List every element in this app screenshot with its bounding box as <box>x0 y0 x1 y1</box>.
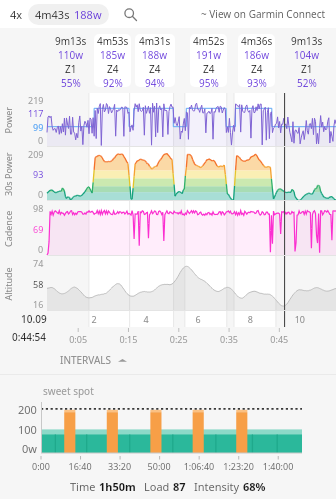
staticText: 58 <box>33 278 44 290</box>
staticText: 200 <box>18 402 37 417</box>
staticText: 0 <box>38 134 44 146</box>
staticText: 9m13s <box>55 34 87 48</box>
staticText: 93% <box>247 76 267 87</box>
button[interactable]: 4m53s <box>94 34 131 87</box>
button[interactable]: 4m36s <box>238 34 275 87</box>
staticText: 117 <box>28 107 44 119</box>
staticText: 4m43s <box>35 7 70 22</box>
staticText: 0w <box>22 441 37 456</box>
button[interactable]: 9m13s <box>52 34 90 87</box>
staticText: 98 <box>33 202 44 214</box>
button[interactable]: 4m43s <box>28 4 109 25</box>
button[interactable]: 9m13s <box>279 34 334 87</box>
staticText: 1h50m <box>99 479 136 494</box>
staticText: 185w <box>100 48 126 62</box>
staticText: 52% <box>297 76 317 87</box>
staticText: 110w <box>58 48 84 62</box>
staticText: 188w <box>142 48 168 62</box>
staticText: 92% <box>103 76 123 87</box>
staticText: Z4 <box>251 62 263 76</box>
staticText: 68% <box>243 479 266 494</box>
staticText: Time <box>70 479 99 494</box>
staticText: 4m36s <box>241 34 273 48</box>
staticText: Load <box>144 479 173 494</box>
staticText: 186w <box>244 48 270 62</box>
staticText: 74 <box>33 257 44 269</box>
staticText: Z1 <box>65 62 77 76</box>
staticText: INTERVALS <box>60 353 112 367</box>
button[interactable]: 4m52s <box>190 34 227 87</box>
staticText: ~ View on Garmin Connect <box>201 7 326 21</box>
staticText: 4m31s <box>139 34 171 48</box>
staticText: Intensity <box>194 479 243 494</box>
staticText: 209 <box>28 148 44 160</box>
staticText: Z4 <box>149 62 161 76</box>
staticText: 99 <box>33 121 44 133</box>
staticText: 93 <box>33 168 44 180</box>
button[interactable]: INTERVALS <box>56 351 131 369</box>
staticText: 100 <box>18 422 37 437</box>
staticText: 0 <box>38 243 44 255</box>
staticText: 16 <box>33 298 44 310</box>
button[interactable]: 4m31s <box>135 34 175 87</box>
staticText: 191w <box>196 48 222 62</box>
staticText: Z4 <box>107 62 119 76</box>
staticText: 188w <box>74 7 102 22</box>
staticText: Z4 <box>203 62 215 76</box>
staticText: 95% <box>199 76 219 87</box>
staticText: 0 <box>38 188 44 200</box>
button[interactable]: ~ View on Garmin Connect <box>199 3 328 25</box>
staticText: 10.09 <box>21 312 47 326</box>
staticText: 0:44:54 <box>12 330 47 344</box>
staticText: Z1 <box>301 62 313 76</box>
staticText: 55% <box>61 76 81 87</box>
staticText: 94% <box>145 76 165 87</box>
staticText: sweet spot <box>43 384 94 398</box>
staticText: 9m13s <box>291 34 323 48</box>
staticText: 219 <box>28 94 44 106</box>
staticText: 104w <box>294 48 320 62</box>
staticText: 87 <box>173 479 186 494</box>
staticText: 4m53s <box>97 34 129 48</box>
staticText: 69 <box>33 223 44 235</box>
staticText: 4x <box>10 7 23 22</box>
button[interactable]: Search <box>121 5 139 23</box>
staticText: 4m52s <box>193 34 225 48</box>
